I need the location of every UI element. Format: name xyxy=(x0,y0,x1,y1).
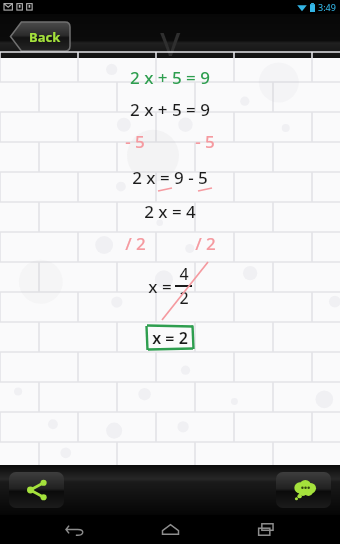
staticText: 2 x + 5 = 9 xyxy=(130,66,210,89)
staticText: 2 x = 9 - 5 xyxy=(132,166,208,189)
button[interactable]: Back xyxy=(9,21,71,52)
staticText: x = 2 xyxy=(152,327,188,349)
button[interactable]: Comments xyxy=(276,472,331,508)
staticText: - 5 xyxy=(195,130,215,153)
staticText: x = xyxy=(148,275,172,298)
staticText: 3:49 xyxy=(318,1,336,13)
staticText: / 2 xyxy=(125,232,146,255)
staticText: 2 x + 5 = 9 xyxy=(130,98,210,121)
staticText: - 5 xyxy=(125,130,145,153)
button[interactable]: Recent apps xyxy=(244,515,288,544)
button[interactable]: Back xyxy=(52,515,96,544)
staticText: 4 xyxy=(179,263,189,285)
button[interactable]: Share xyxy=(9,472,64,508)
staticText: Back xyxy=(29,28,61,46)
staticText: 2 xyxy=(179,287,189,309)
staticText: y xyxy=(160,12,181,56)
staticText: / 2 xyxy=(195,232,216,255)
button[interactable]: Home xyxy=(148,515,192,544)
staticText: 2 x = 4 xyxy=(144,200,196,223)
